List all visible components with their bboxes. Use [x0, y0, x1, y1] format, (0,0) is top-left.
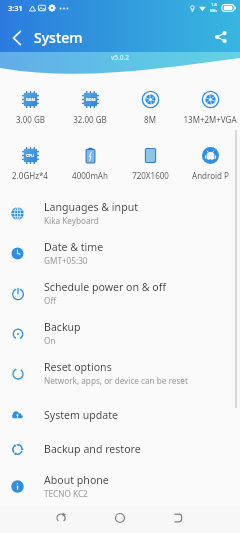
staticText: 720X1600 [132, 170, 169, 181]
button[interactable]: ROM [60, 91, 120, 125]
staticText: M/s [210, 8, 218, 14]
staticText: On [44, 335, 56, 346]
button[interactable]: Reset options [0, 353, 240, 393]
staticText: Network, apps, or device can be reset [44, 375, 188, 386]
staticText: Backup [44, 320, 81, 334]
button[interactable]: Languages & input [0, 193, 240, 233]
button[interactable]: 8M [120, 91, 180, 125]
button[interactable]: Backup and restore [0, 432, 240, 466]
staticText: TECNO KC2 [44, 488, 88, 499]
button[interactable]: 4000mAh [60, 147, 120, 181]
button[interactable]: RAM [0, 91, 60, 125]
staticText: Date & time [44, 240, 104, 254]
button[interactable]: Android P [180, 147, 240, 181]
staticText: 1.8 [211, 2, 217, 8]
staticText: 8M [144, 114, 156, 125]
staticText: v5.0.2 [111, 53, 129, 62]
button[interactable]: Back [47, 504, 75, 531]
staticText: 3.00 GB [16, 114, 45, 125]
button[interactable]: About phone [0, 466, 240, 506]
button[interactable]: Recents [164, 504, 192, 531]
button[interactable]: 720X1600 [120, 147, 180, 181]
staticText: 3:31 [8, 3, 23, 13]
staticText: Android P [192, 170, 229, 181]
button[interactable]: Date & time [0, 233, 240, 273]
staticText: About phone [44, 473, 109, 487]
staticText: System update [44, 408, 119, 422]
staticText: 4000mAh [72, 170, 108, 181]
staticText: Schedule power on & off [44, 280, 167, 294]
button[interactable]: System update [0, 398, 240, 432]
staticText: Languages & input [44, 200, 139, 214]
button[interactable]: Schedule power on & off [0, 273, 240, 313]
button[interactable]: 13M+2M+VGA [180, 91, 240, 125]
staticText: 32.00 GB [73, 114, 107, 125]
staticText: ROM [86, 97, 96, 102]
button[interactable]: Home [106, 504, 134, 531]
button[interactable]: Backup [0, 313, 240, 353]
staticText: System [34, 28, 83, 47]
staticText: Off [44, 295, 57, 306]
button[interactable]: Share [209, 25, 233, 49]
staticText: Kika Keyboard [44, 215, 99, 226]
staticText: 2.0GHz*4 [12, 170, 48, 181]
staticText: RAM [26, 97, 36, 102]
button[interactable]: Back [6, 27, 27, 48]
staticText: Reset options [44, 360, 112, 374]
button[interactable]: CPU [0, 147, 60, 181]
staticText: 13M+2M+VGA [183, 114, 237, 125]
staticText: GMT+05:30 [44, 255, 88, 266]
staticText: Backup and restore [44, 442, 141, 456]
staticText: CPU [26, 153, 35, 158]
